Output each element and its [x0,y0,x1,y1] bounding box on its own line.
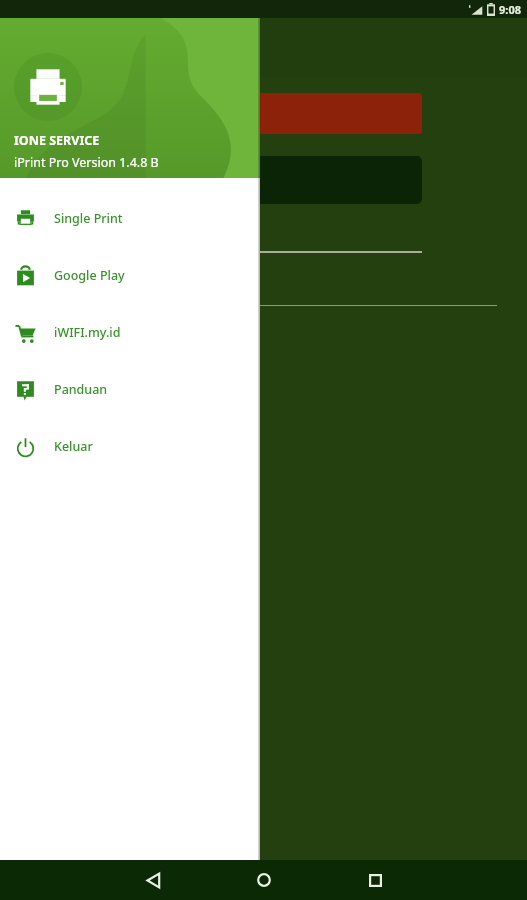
button[interactable]: Back [131,860,175,900]
staticText: Proses [120,171,163,189]
staticText: Google Play [54,267,125,284]
staticText: Reset Printer [118,105,199,123]
button[interactable]: Single Print [0,190,260,247]
staticText: 9:08 [499,2,521,17]
staticText: IONE SERVICE [14,132,100,149]
button[interactable]: Keluar [0,418,260,475]
staticText: Single Print [54,210,123,227]
staticText: Jumlah voucher disini [104,280,225,296]
button[interactable]: Proses [104,156,422,204]
button[interactable]: Reset Printer [104,93,422,134]
button[interactable]: Recent apps [353,860,397,900]
staticText: iPrint Pro Version 1.4.8 B [14,154,159,171]
button[interactable]: Panduan [0,361,260,418]
button[interactable]: Home [242,860,286,900]
button[interactable]: Google Play [0,247,260,304]
button[interactable]: iWIFI.my.id [0,304,260,361]
staticText: iWIFI.my.id [54,324,121,341]
staticText: Keluar [54,438,93,455]
staticText: Panduan [54,381,108,398]
